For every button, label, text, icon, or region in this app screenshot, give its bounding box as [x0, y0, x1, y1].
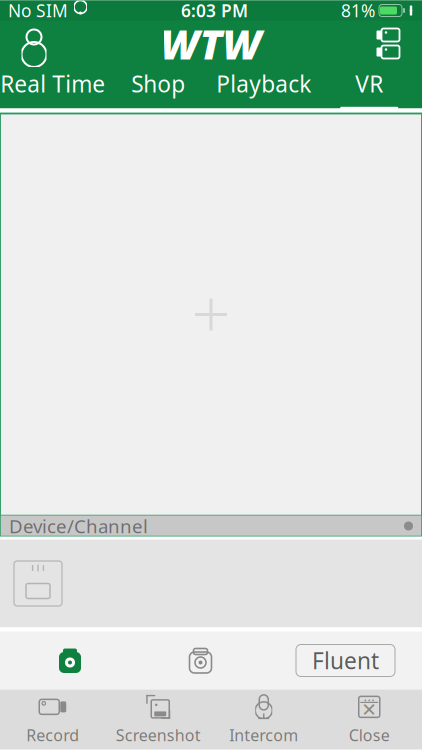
button[interactable]: VR — [316, 66, 422, 108]
staticText: ✕ — [361, 699, 377, 720]
staticText: Intercom — [229, 724, 298, 746]
button[interactable]: Fluent — [296, 644, 395, 676]
button[interactable]: PTZ control — [35, 637, 105, 683]
button[interactable]: Devices — [362, 20, 414, 66]
button[interactable]: Add device — [14, 561, 62, 606]
button[interactable]: Lens control — [165, 637, 235, 683]
button[interactable]: Account — [8, 20, 60, 66]
staticText: Close — [349, 724, 390, 746]
button[interactable]: Shop — [105, 66, 211, 108]
staticText: No SIM — [8, 0, 68, 22]
staticText: Device/Channel — [9, 514, 148, 538]
button[interactable]: Screenshot — [105, 689, 211, 749]
staticText: Playback — [216, 69, 311, 99]
button[interactable]: Real Time — [0, 66, 105, 108]
staticText: VR — [355, 69, 383, 99]
staticText: Record — [26, 724, 79, 746]
staticText: Real Time — [0, 69, 105, 99]
button[interactable]: Intercom — [211, 689, 316, 749]
button[interactable]: Record — [0, 689, 105, 749]
staticText: Shop — [131, 69, 185, 99]
staticText: 81% — [341, 0, 375, 22]
staticText: 6:03 PM — [181, 0, 248, 22]
button[interactable]: ✕ — [316, 689, 422, 749]
staticText: WTW — [160, 16, 261, 71]
staticText: Screenshot — [116, 724, 201, 746]
button[interactable]: Playback — [211, 66, 316, 108]
staticText: Fluent — [312, 645, 379, 675]
